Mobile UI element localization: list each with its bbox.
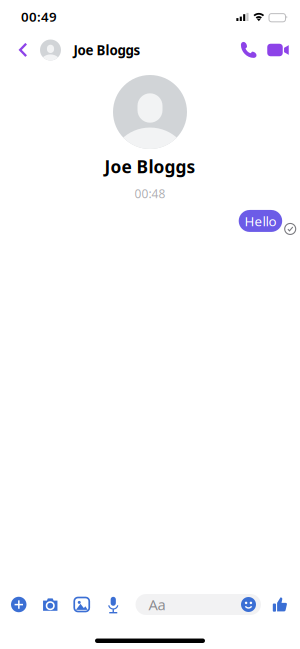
staticText: 00:49 bbox=[21, 8, 57, 25]
button[interactable]: Aa bbox=[135, 594, 261, 615]
button[interactable]: Hello bbox=[239, 210, 282, 232]
button[interactable]: More options bbox=[3, 592, 34, 616]
staticText: 00:48 bbox=[134, 185, 165, 201]
staticText: Aa bbox=[148, 595, 165, 614]
button[interactable]: Video call bbox=[263, 36, 293, 64]
button[interactable]: Joe Bloggs bbox=[40, 35, 140, 64]
staticText: Hello bbox=[244, 212, 276, 230]
button[interactable]: Send a like bbox=[269, 593, 291, 615]
button[interactable]: Photos bbox=[66, 592, 97, 616]
button[interactable]: Voice message bbox=[97, 592, 129, 616]
button[interactable]: Camera bbox=[34, 592, 66, 616]
button[interactable]: Back bbox=[6, 35, 40, 65]
staticText: Joe Bloggs bbox=[104, 155, 195, 178]
button[interactable]: Voice call bbox=[235, 36, 263, 64]
staticText: Joe Bloggs bbox=[73, 41, 140, 59]
